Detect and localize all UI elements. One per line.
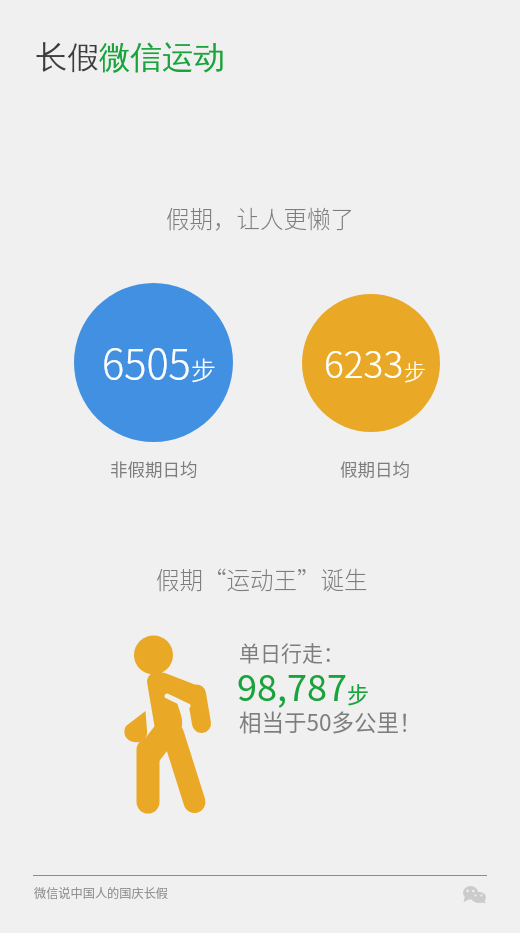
staticText: 微信说中国人的国庆长假	[34, 884, 169, 902]
staticText: 长假微信运动	[36, 38, 225, 78]
staticText: 6233	[324, 335, 404, 389]
staticText: 6505	[102, 331, 191, 391]
staticText: 步	[191, 351, 217, 387]
staticText: 假期，让人更懒了	[166, 201, 354, 235]
button[interactable]: WeChat	[463, 886, 486, 903]
staticText: 相当于50多公里！	[239, 705, 422, 738]
staticText: 假期“运动王”诞生	[156, 562, 368, 596]
staticText: 步	[347, 677, 370, 709]
staticText: 单日行走：	[239, 637, 344, 667]
staticText: 假期日均	[340, 456, 410, 481]
staticText: 非假期日均	[110, 456, 198, 481]
staticText: 步	[404, 354, 427, 386]
staticText: 98,787	[237, 659, 347, 711]
